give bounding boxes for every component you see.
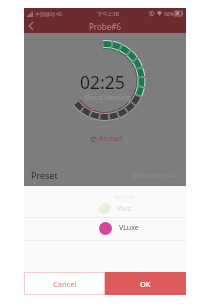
staticText: Good Heating	[85, 93, 131, 103]
staticText: Vivid	[117, 204, 132, 213]
button[interactable]: VLuxe	[24, 218, 186, 238]
staticText: Nature	[114, 193, 134, 201]
button[interactable]: View More All>	[133, 171, 178, 180]
staticText: Cancel	[53, 279, 77, 289]
staticText: 下午2:38	[97, 10, 119, 18]
staticText: Probe#6	[89, 21, 121, 32]
button[interactable]: Cancel	[24, 272, 105, 295]
staticText: OK	[140, 279, 151, 289]
button[interactable]: Restart	[90, 134, 123, 144]
button[interactable]: OK	[105, 272, 186, 295]
staticText: Restart	[99, 134, 123, 144]
staticText: 68%	[164, 11, 174, 18]
staticText: VLuxe	[119, 223, 139, 233]
staticText: Preset	[31, 169, 58, 181]
staticText: 02:25	[80, 70, 125, 94]
button[interactable]: Back	[24, 19, 40, 33]
staticText: 中国移动	[35, 11, 55, 17]
button[interactable]: Vivid	[24, 198, 186, 218]
staticText: 4G	[56, 11, 63, 18]
